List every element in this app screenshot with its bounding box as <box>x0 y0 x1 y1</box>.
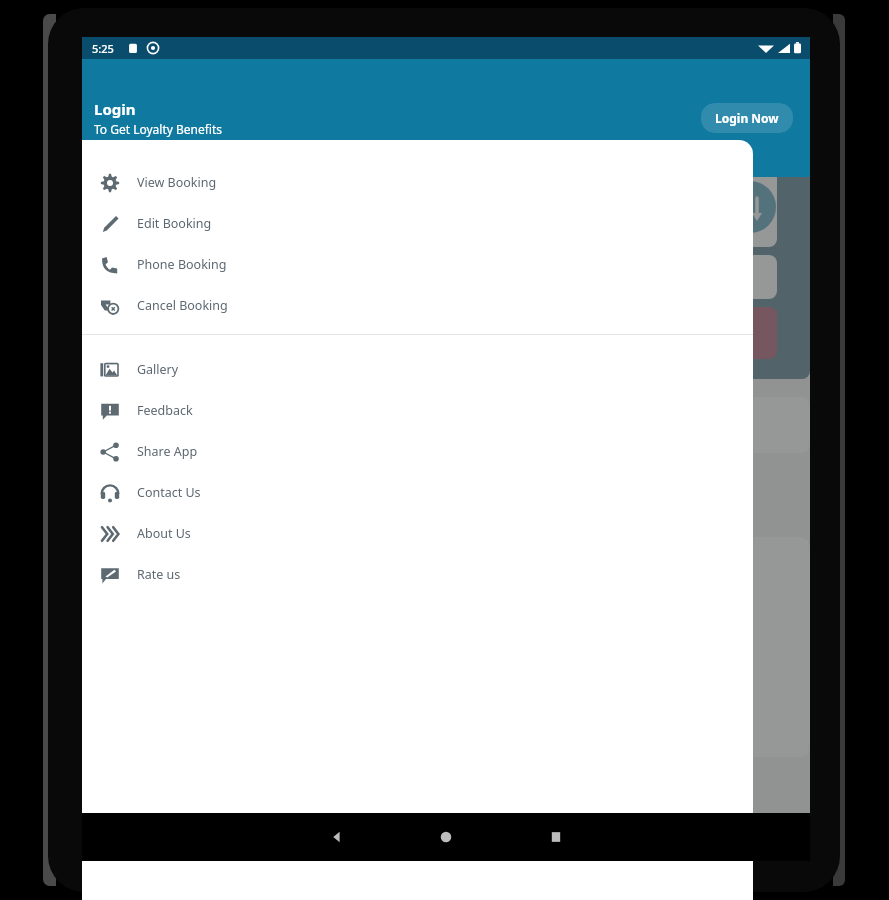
staticText: Phone Booking <box>137 256 227 273</box>
staticText: Edit Booking <box>137 215 212 232</box>
button[interactable]: Recents <box>545 826 567 848</box>
staticText: Login Now <box>715 110 779 126</box>
button[interactable]: Contact Us <box>82 472 753 513</box>
staticText: Rate us <box>137 566 181 583</box>
staticText: Cancel Booking <box>137 297 228 314</box>
button[interactable]: Back <box>326 826 348 848</box>
staticText: Lucknow <box>112 555 179 575</box>
button[interactable]: Login Now <box>700 103 794 133</box>
button[interactable]: Feedback <box>82 390 753 431</box>
button[interactable]: Gallery <box>82 349 753 390</box>
staticText: About Us <box>137 525 191 542</box>
staticText: View Booking <box>137 174 217 191</box>
button[interactable]: Home <box>435 826 457 848</box>
button[interactable]: About Us <box>82 513 753 554</box>
button[interactable]: View Booking <box>82 162 753 203</box>
button[interactable]: Edit Booking <box>82 203 753 244</box>
button[interactable]: Rate us <box>82 554 753 595</box>
button[interactable]: Cancel Booking <box>82 285 753 326</box>
staticText: Login <box>94 99 136 119</box>
staticText: 5:25 <box>92 41 114 56</box>
staticText: Share App <box>137 443 198 460</box>
staticText: Feedback <box>137 402 193 419</box>
button[interactable]: Share App <box>82 431 753 472</box>
staticText: To Get Loyalty Benefits <box>94 121 223 137</box>
staticText: Gallery <box>137 361 179 378</box>
button[interactable]: Phone Booking <box>82 244 753 285</box>
staticText: Contact Us <box>137 484 201 501</box>
